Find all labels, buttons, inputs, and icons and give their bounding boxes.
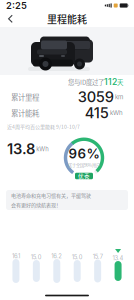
staticText: 13.4 bbox=[113, 254, 124, 262]
staticText: 15.0 bbox=[72, 253, 83, 261]
staticText: 3059 bbox=[78, 88, 114, 106]
staticText: 近4周平均百公里能耗 9/10-10/7 bbox=[7, 123, 80, 130]
staticText: 累计能耗 bbox=[11, 108, 39, 118]
staticText: 2:25 bbox=[6, 0, 27, 11]
staticText: 天 bbox=[117, 77, 123, 87]
staticText: 112 bbox=[104, 77, 117, 87]
staticText: 累计里程 bbox=[11, 92, 39, 102]
staticText: 13.8 bbox=[7, 140, 35, 158]
staticText: 15.0 bbox=[31, 253, 42, 261]
button[interactable]: 优秀 bbox=[75, 173, 93, 179]
staticText: 优于全国96%用户 bbox=[68, 162, 100, 168]
staticText: 优秀 bbox=[78, 172, 90, 180]
staticText: 16.2 bbox=[51, 252, 62, 260]
staticText: 里程能耗 bbox=[47, 12, 87, 26]
button[interactable]: Back bbox=[3, 11, 18, 27]
staticText: km bbox=[115, 93, 123, 101]
staticText: kWh bbox=[36, 145, 48, 153]
staticText: 16.1 bbox=[12, 252, 20, 260]
staticText: 会有更好的续航表现！ bbox=[11, 201, 61, 208]
staticText: 电池寿命和充电习惯有关，平缓驾驶 bbox=[11, 192, 91, 199]
staticText: 您与ID度过了 bbox=[68, 77, 104, 87]
staticText: 415 bbox=[85, 104, 109, 122]
staticText: kWh bbox=[110, 109, 123, 117]
staticText: 96% bbox=[68, 146, 99, 162]
staticText: 15.7 bbox=[93, 253, 103, 260]
